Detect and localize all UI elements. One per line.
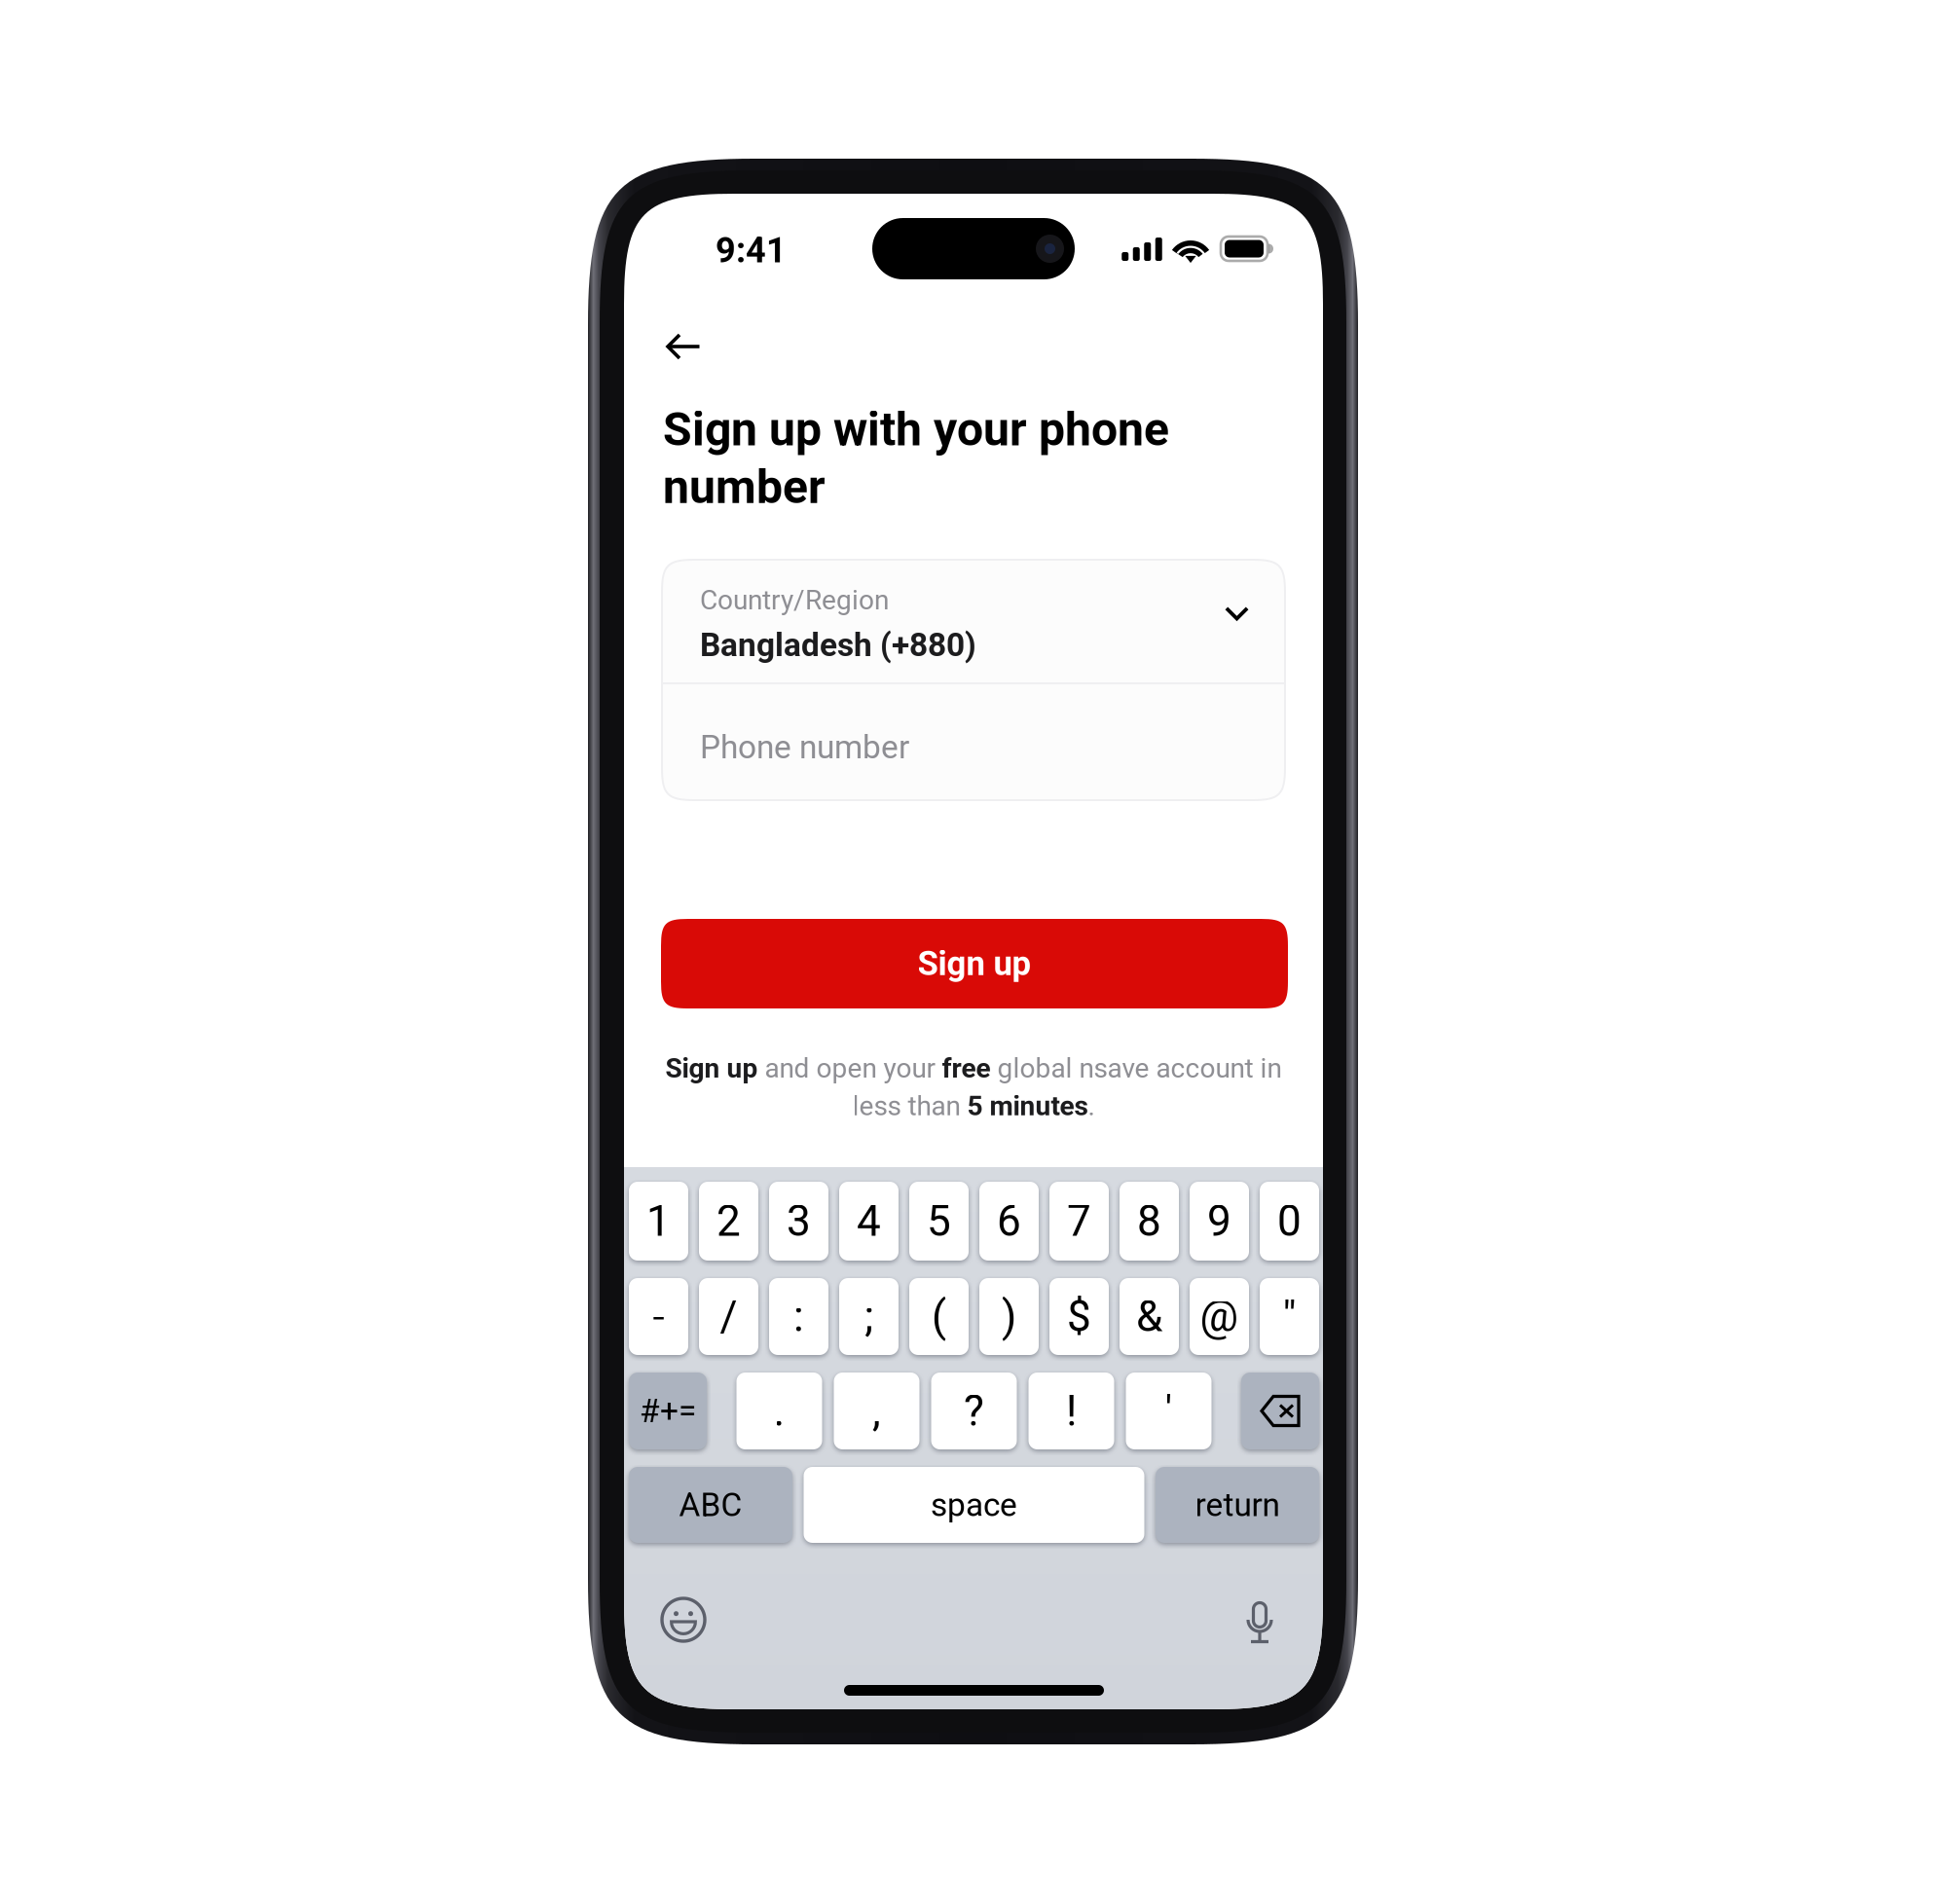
staticText: @ — [1200, 1291, 1239, 1342]
button[interactable]: 9 — [1190, 1182, 1249, 1261]
staticText: . — [1088, 1090, 1095, 1122]
staticText: Phone number — [700, 728, 909, 766]
staticText: Sign up — [918, 944, 1031, 983]
staticText: . — [773, 1386, 785, 1436]
staticText: 0 — [1277, 1196, 1302, 1246]
staticText: 6 — [997, 1196, 1021, 1246]
staticText: 3 — [787, 1196, 811, 1246]
button[interactable]: 0 — [1260, 1182, 1319, 1261]
button[interactable]: 4 — [839, 1182, 899, 1261]
staticText: Bangladesh (+880) — [700, 626, 976, 664]
button[interactable]: ! — [1029, 1373, 1114, 1449]
staticText: Country/Region — [700, 584, 889, 616]
button[interactable]: & — [1120, 1278, 1179, 1355]
button[interactable]: 5 — [909, 1182, 969, 1261]
button[interactable]: Dictation — [1242, 1598, 1277, 1649]
staticText: #+= — [640, 1392, 696, 1430]
staticText: 4 — [857, 1196, 881, 1246]
staticText: ! — [1066, 1386, 1077, 1436]
staticText: ABC — [679, 1486, 742, 1524]
button[interactable]: 6 — [979, 1182, 1039, 1261]
staticText: Sign up — [665, 1052, 758, 1084]
button[interactable]: #+= — [629, 1373, 707, 1449]
button[interactable]: Back — [648, 315, 718, 378]
staticText: 2 — [716, 1196, 741, 1246]
button[interactable]: . — [736, 1373, 822, 1449]
button[interactable]: Sign up — [661, 919, 1288, 1008]
staticText: less than — [852, 1090, 967, 1122]
staticText: 5 minutes — [967, 1090, 1088, 1122]
button[interactable]: $ — [1049, 1278, 1109, 1355]
staticText: " — [1283, 1291, 1296, 1342]
button[interactable]: space — [804, 1467, 1144, 1543]
button[interactable]: - — [629, 1278, 688, 1355]
button[interactable]: ABC — [629, 1467, 792, 1543]
button[interactable]: 1 — [629, 1182, 688, 1261]
staticText: & — [1136, 1291, 1162, 1342]
staticText: space — [931, 1486, 1017, 1524]
staticText: 9:41 — [716, 230, 787, 271]
button[interactable]: 3 — [769, 1182, 828, 1261]
button[interactable]: ) — [979, 1278, 1039, 1355]
staticText: ) — [1002, 1291, 1016, 1342]
staticText: : — [793, 1291, 804, 1342]
button[interactable]: " — [1260, 1278, 1319, 1355]
button[interactable]: ' — [1126, 1373, 1212, 1449]
button[interactable]: return — [1156, 1467, 1319, 1543]
button[interactable]: 7 — [1049, 1182, 1109, 1261]
button[interactable]: , — [834, 1373, 919, 1449]
button[interactable]: Phone number — [662, 684, 1285, 800]
staticText: - — [653, 1291, 664, 1342]
button[interactable]: ? — [931, 1373, 1017, 1449]
staticText: and open your — [758, 1052, 942, 1084]
button[interactable]: Country/Region — [662, 560, 1285, 682]
staticText: ( — [932, 1291, 946, 1342]
staticText: Sign up with your phone number — [663, 402, 1169, 514]
staticText: 1 — [646, 1196, 671, 1246]
button[interactable]: Emoji keyboard — [659, 1595, 708, 1644]
staticText: ; — [864, 1291, 873, 1342]
staticText: 5 — [927, 1196, 951, 1246]
staticText: 8 — [1137, 1196, 1161, 1246]
staticText: ' — [1165, 1386, 1173, 1436]
staticText: 7 — [1067, 1196, 1091, 1246]
button[interactable]: / — [699, 1278, 758, 1355]
staticText: free — [942, 1052, 991, 1084]
staticText: / — [720, 1291, 737, 1342]
button[interactable]: : — [769, 1278, 828, 1355]
button[interactable]: 8 — [1120, 1182, 1179, 1261]
button[interactable]: @ — [1190, 1278, 1249, 1355]
staticText: global nsave account in — [991, 1052, 1282, 1084]
staticText: ? — [964, 1386, 984, 1436]
button[interactable]: ; — [839, 1278, 899, 1355]
staticText: $ — [1067, 1291, 1091, 1342]
staticText: 9 — [1207, 1196, 1231, 1246]
staticText: return — [1195, 1486, 1280, 1524]
button[interactable]: Delete — [1241, 1373, 1319, 1449]
button[interactable]: ( — [909, 1278, 969, 1355]
button[interactable]: 2 — [699, 1182, 758, 1261]
staticText: , — [872, 1386, 881, 1436]
